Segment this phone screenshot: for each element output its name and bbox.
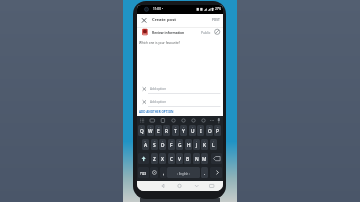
staticText: 6	[183, 125, 185, 128]
button[interactable]: ‹ English ›	[167, 167, 200, 178]
button[interactable]	[138, 153, 149, 164]
button[interactable]: X	[159, 153, 166, 164]
staticText: 1	[141, 125, 143, 128]
button[interactable]: Q	[138, 125, 145, 136]
staticText: H	[187, 142, 191, 149]
button[interactable]	[137, 181, 165, 191]
button[interactable]: L	[210, 139, 217, 150]
button[interactable]: H	[185, 139, 192, 150]
button[interactable]	[150, 167, 158, 178]
staticText: Review information	[152, 30, 185, 34]
staticText: Create post	[152, 17, 177, 23]
staticText: •	[162, 7, 164, 11]
staticText: W	[148, 128, 153, 135]
staticText: M	[202, 156, 207, 163]
button[interactable]: D	[159, 139, 166, 150]
button[interactable]: S	[151, 139, 158, 150]
staticText: %	[171, 139, 173, 142]
button[interactable]	[165, 181, 194, 191]
staticText: Public	[201, 30, 211, 34]
staticText: B	[186, 156, 190, 163]
button[interactable]: ?123	[138, 167, 149, 178]
button[interactable]: Z	[151, 153, 158, 164]
staticText: D	[161, 142, 165, 149]
staticText: @	[144, 139, 147, 142]
staticText: ADD ANOTHER OPTION	[139, 110, 174, 114]
staticText: N	[195, 156, 199, 163]
button[interactable]: C	[168, 153, 175, 164]
staticText: I	[200, 128, 202, 135]
staticText: 27%	[215, 7, 222, 11]
staticText: Y	[182, 128, 185, 135]
staticText: R	[165, 128, 169, 135]
button[interactable]: G	[176, 139, 183, 150]
staticText: X	[161, 156, 164, 163]
button[interactable]: K	[201, 139, 208, 150]
staticText: ?123	[140, 172, 147, 176]
staticText: F	[170, 142, 173, 149]
staticText: U	[191, 128, 195, 135]
button[interactable]: B	[184, 153, 191, 164]
staticText: S	[153, 142, 156, 149]
staticText: E	[157, 128, 160, 135]
staticText: C	[170, 156, 174, 163]
staticText: Add option	[150, 100, 167, 104]
staticText: $	[162, 139, 164, 142]
staticText: 11:00	[153, 7, 161, 11]
staticText: 4	[166, 125, 168, 128]
button[interactable]: R	[163, 125, 170, 136]
staticText: POST	[212, 18, 220, 22]
staticText: ,	[163, 170, 165, 177]
staticText: T	[174, 128, 177, 135]
button[interactable]: F	[168, 139, 175, 150]
button[interactable]: I	[197, 125, 204, 136]
staticText: )	[213, 139, 214, 142]
staticText: (	[204, 139, 205, 142]
staticText: A	[144, 142, 148, 149]
button[interactable]: Add option	[137, 84, 223, 97]
button[interactable]: P	[214, 125, 221, 136]
button[interactable]	[194, 181, 223, 191]
button[interactable]	[210, 167, 222, 178]
staticText: G	[178, 142, 182, 149]
staticText: Which one is your favourite?	[139, 41, 181, 45]
staticText: -	[188, 139, 189, 142]
button[interactable]: Y	[180, 125, 187, 136]
staticText: V	[178, 156, 181, 163]
staticText: Add option	[150, 87, 167, 91]
button[interactable]: J	[193, 139, 200, 150]
button[interactable]: T	[172, 125, 179, 136]
button[interactable]: POST	[212, 16, 221, 24]
staticText: O	[208, 128, 212, 135]
button[interactable]: V	[176, 153, 183, 164]
button[interactable]: M	[201, 153, 208, 164]
button[interactable]: .	[201, 167, 208, 178]
button[interactable]: U	[189, 125, 196, 136]
button[interactable]: O	[206, 125, 213, 136]
staticText: Q	[140, 128, 144, 135]
staticText: 3	[158, 125, 160, 128]
button[interactable]	[211, 153, 222, 164]
button[interactable]: A	[142, 139, 149, 150]
button[interactable]: ADD ANOTHER OPTION	[137, 108, 187, 116]
staticText: 7	[192, 125, 194, 128]
staticText: +	[196, 139, 198, 142]
button[interactable]	[137, 28, 223, 37]
button[interactable]: E	[155, 125, 162, 136]
staticText: 9	[209, 125, 211, 128]
button[interactable]	[139, 15, 149, 25]
staticText: P	[216, 128, 219, 135]
staticText: 2	[150, 125, 152, 128]
button[interactable]: N	[193, 153, 200, 164]
staticText: 8	[200, 125, 202, 128]
button[interactable]: Add option	[137, 97, 223, 110]
staticText: Z	[153, 156, 156, 163]
staticText: ‹ English ›	[177, 172, 190, 176]
staticText: 5	[175, 125, 177, 128]
button[interactable]: W	[147, 125, 154, 136]
staticText: 0	[217, 125, 219, 128]
staticText: K	[203, 142, 207, 149]
button[interactable]: ,	[160, 167, 167, 178]
staticText: L	[212, 142, 215, 149]
staticText: &	[179, 139, 181, 142]
